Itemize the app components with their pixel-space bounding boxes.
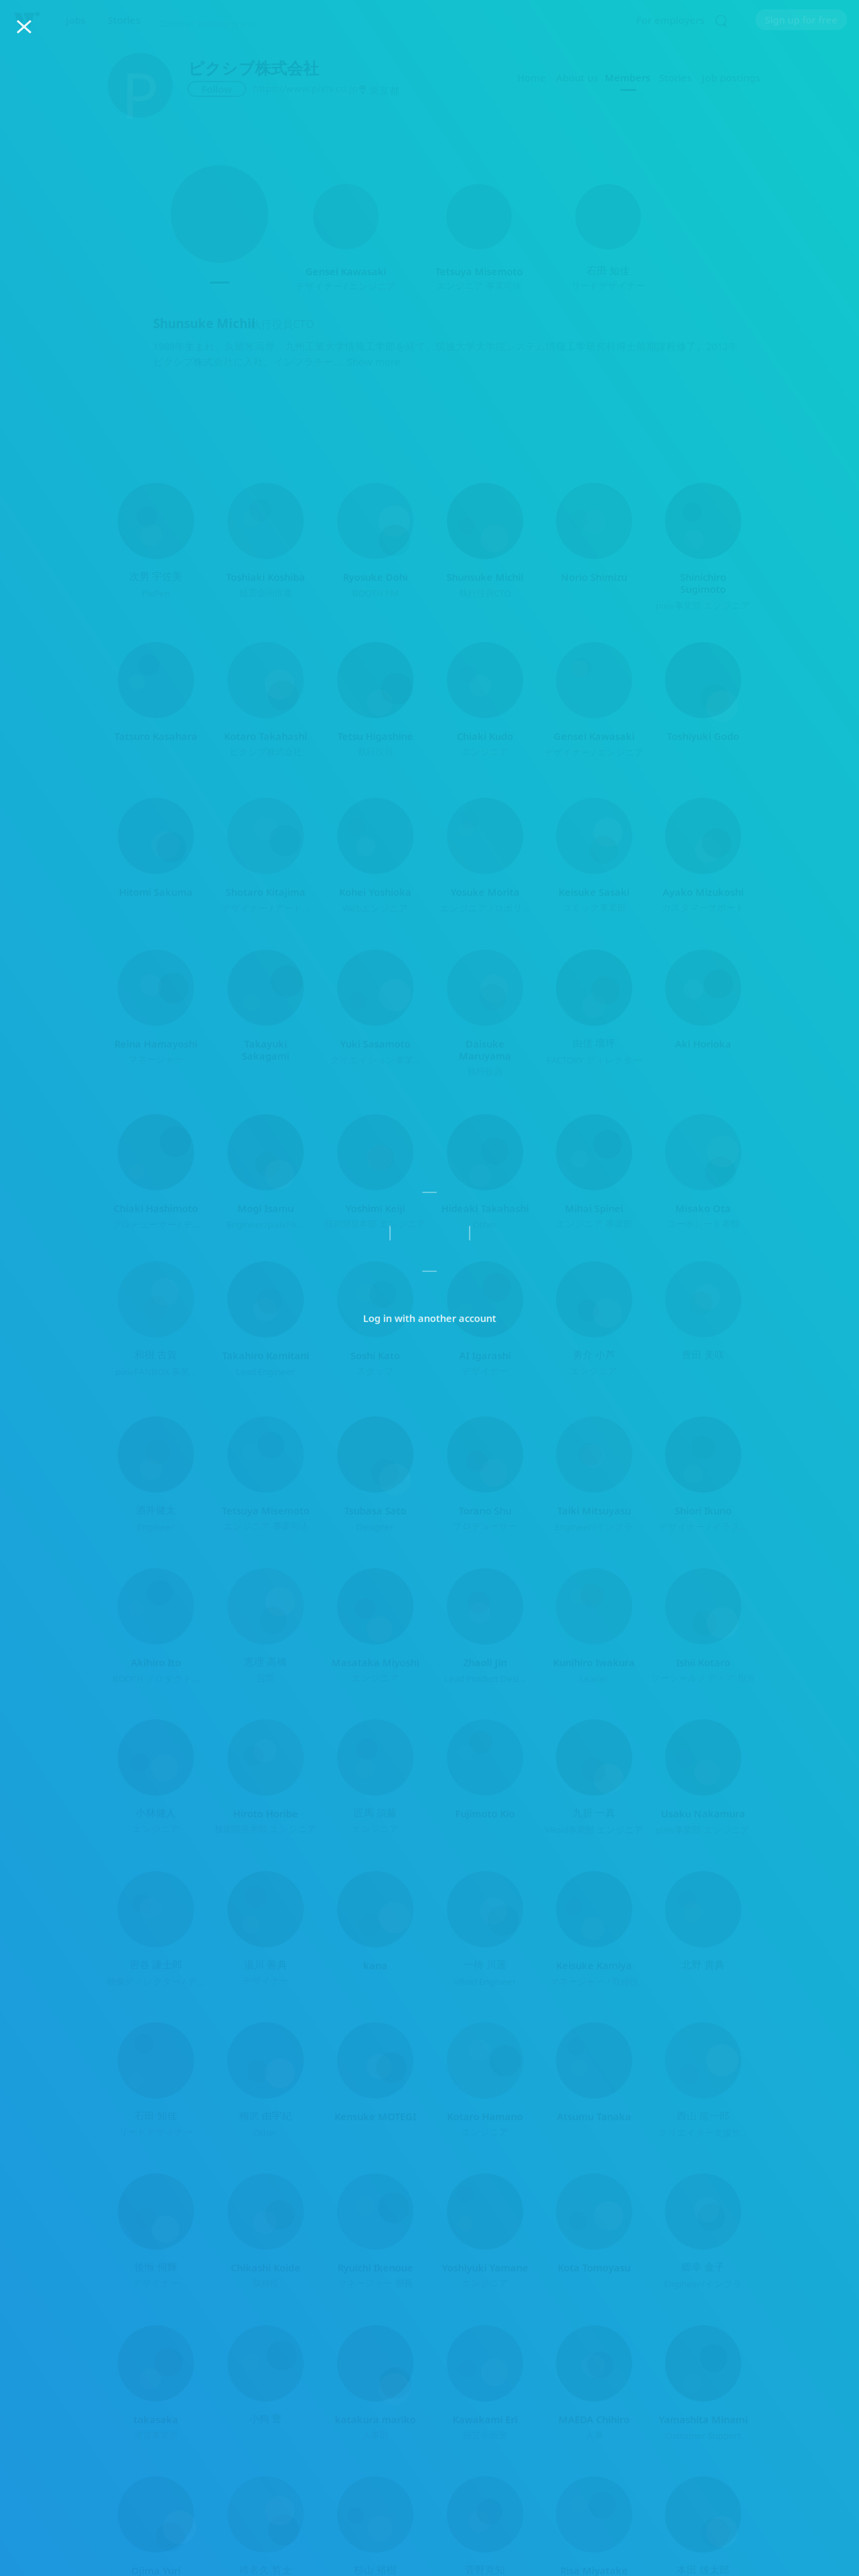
staticText: Gensei Kawasaki bbox=[305, 265, 386, 278]
staticText: 湯川 善典 bbox=[244, 1959, 287, 1971]
staticText: Hiroto Horibe bbox=[233, 1807, 298, 1820]
staticText: Taiki Mitsuyasu bbox=[557, 1504, 631, 1517]
staticText: Soshi Kato bbox=[351, 1349, 400, 1362]
button[interactable]: Members bbox=[605, 70, 650, 85]
staticText: Hideaki Takahashi bbox=[441, 1202, 529, 1215]
staticText: Log in with another account bbox=[363, 1312, 496, 1325]
staticText: Aki Horioka bbox=[675, 1037, 731, 1050]
staticText: Masataka Miyoshi bbox=[331, 1656, 419, 1669]
staticText: 菅野克知 bbox=[465, 2564, 505, 2576]
staticText: Chiaki Kudo bbox=[457, 730, 513, 743]
staticText: 豊田 美咲 bbox=[682, 1349, 725, 1361]
staticText: Takayuki bbox=[244, 1037, 287, 1050]
staticText: Follow bbox=[201, 82, 232, 95]
staticText: Jobs bbox=[66, 14, 86, 27]
staticText: Home bbox=[517, 71, 546, 84]
staticText: Mihai Spinei bbox=[565, 1202, 623, 1215]
staticText: 石田 知佳 bbox=[134, 2110, 177, 2122]
staticText: Kotaro Takahashi bbox=[224, 730, 307, 743]
staticText: 恵理 高橋 bbox=[244, 1656, 287, 1668]
staticText: Fujimoto Kio bbox=[455, 1807, 515, 1820]
staticText: Misako Ota bbox=[675, 1202, 731, 1215]
staticText: Shinichiro bbox=[680, 570, 726, 583]
staticText: Shiori Ikuno bbox=[675, 1504, 732, 1517]
staticText: Sign up for free bbox=[765, 13, 838, 26]
staticText: ピクシブ株式会社 bbox=[188, 59, 319, 79]
staticText: Keisuke Sasaki bbox=[559, 885, 630, 898]
button[interactable]: Stories bbox=[659, 70, 692, 85]
staticText: Daisuke bbox=[466, 1037, 504, 1050]
staticText: Sakagami bbox=[242, 1049, 289, 1062]
staticText: Tatsuro Kasahara bbox=[114, 730, 197, 743]
staticText: 小狗 豊 bbox=[249, 2413, 282, 2425]
staticText: kana bbox=[363, 1959, 387, 1972]
button[interactable]: Jobs bbox=[66, 13, 86, 27]
staticText: 後悔 伺輝 bbox=[134, 2261, 177, 2273]
button[interactable]: Close bbox=[0, 0, 48, 53]
staticText: 北野 貴典 bbox=[682, 1959, 725, 1971]
button[interactable]: Stories bbox=[108, 13, 140, 27]
staticText: Shotaro Kitajima bbox=[226, 885, 305, 898]
staticText: Stories bbox=[108, 14, 140, 27]
staticText: Yamashita Minami bbox=[659, 2413, 748, 2426]
staticText: Kunihiro Iwakura bbox=[553, 1656, 635, 1669]
staticText: Atsumu Tanaka bbox=[557, 2110, 631, 2123]
staticText: Mogi Isamu bbox=[237, 1202, 294, 1215]
staticText: Kohei Yoshioka bbox=[339, 885, 411, 898]
staticText: Torano Shu bbox=[459, 1504, 511, 1517]
staticText: Yosuke Morita bbox=[451, 885, 519, 898]
staticText: 靖名久 哲士 bbox=[239, 2564, 292, 2576]
staticText: 九折 一真 bbox=[573, 1807, 615, 1819]
button[interactable]: Sign up for free bbox=[755, 9, 847, 30]
staticText: takasaka bbox=[133, 2413, 178, 2426]
button[interactable]: About us bbox=[556, 70, 598, 85]
staticText: Kensuke MOTEGI bbox=[335, 2110, 416, 2123]
staticText: Kota Tomoyasu bbox=[558, 2261, 631, 2274]
staticText: Ojima Yuri bbox=[131, 2564, 181, 2576]
button[interactable]: For employers bbox=[636, 13, 704, 27]
button[interactable]: Follow bbox=[188, 82, 246, 96]
staticText: Kawakami Eri bbox=[453, 2413, 517, 2426]
button[interactable]: Job postings bbox=[702, 70, 760, 85]
staticText: Maruyama bbox=[459, 1049, 511, 1062]
button[interactable]: Log in with another account bbox=[296, 1306, 563, 1330]
staticText: Gensei Kawasaki bbox=[554, 730, 635, 743]
staticText: 郷幸 金子 bbox=[682, 2261, 725, 2273]
button[interactable]: Home bbox=[517, 70, 546, 85]
staticText: 由佳 壇坪 bbox=[573, 1037, 615, 1049]
staticText: About us bbox=[556, 71, 598, 84]
staticText: 和樹 古賀 bbox=[134, 1349, 177, 1361]
staticText: 匠馬 須藤 bbox=[354, 1807, 397, 1819]
button[interactable]: Search bbox=[714, 12, 733, 31]
